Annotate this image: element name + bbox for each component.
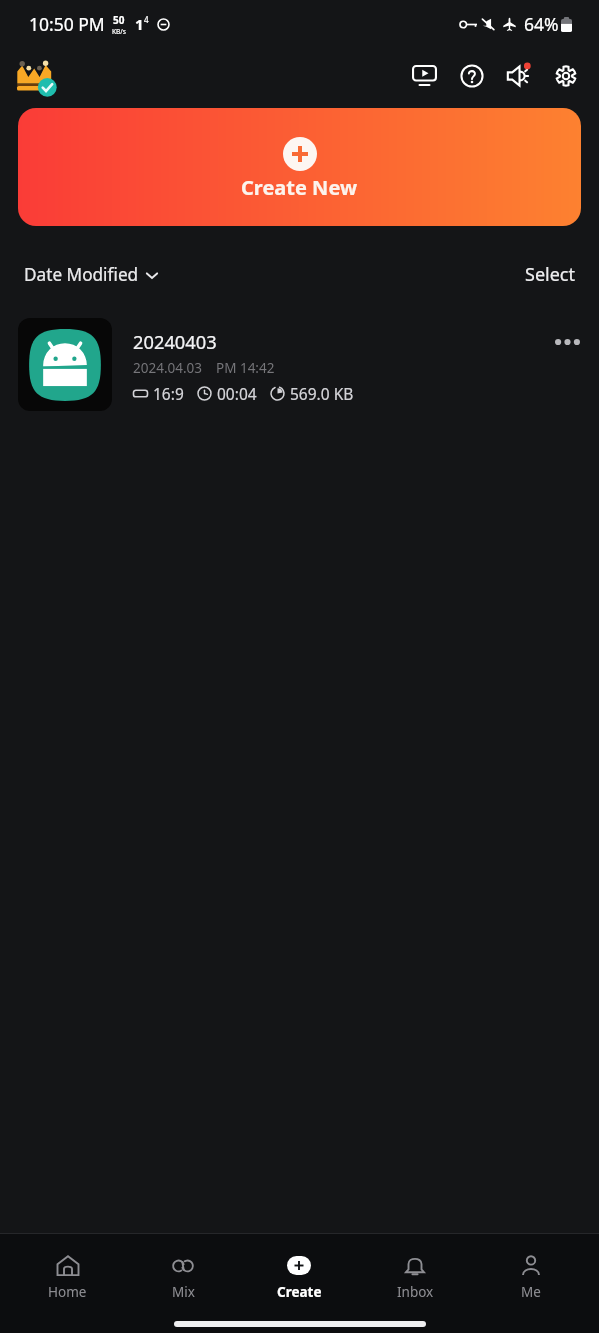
staticText: Me xyxy=(521,1283,541,1300)
button[interactable]: Select xyxy=(525,262,575,286)
staticText: KB/s xyxy=(112,27,126,36)
button[interactable]: Mix xyxy=(125,1255,241,1300)
staticText: 16:9 xyxy=(153,383,184,404)
button[interactable]: Me xyxy=(473,1255,589,1300)
staticText: 1 xyxy=(135,14,144,34)
button[interactable]: Create xyxy=(241,1255,357,1300)
staticText: PM 14:42 xyxy=(216,359,275,377)
button[interactable]: Home xyxy=(10,1255,125,1300)
staticText: 10:50 PM xyxy=(29,12,105,36)
staticText: 4 xyxy=(144,14,149,25)
button[interactable]: Help xyxy=(448,53,495,99)
staticText: 50 xyxy=(113,13,125,27)
staticText: Date Modified xyxy=(24,263,139,286)
staticText: 00:04 xyxy=(217,383,257,404)
staticText: 20240403 xyxy=(133,329,217,354)
button[interactable]: More options xyxy=(545,320,589,364)
staticText: Create xyxy=(277,1283,322,1300)
button[interactable]: Inbox xyxy=(357,1255,473,1300)
staticText: 569.0 KB xyxy=(290,383,354,404)
button[interactable]: Announcements xyxy=(495,53,542,99)
staticText: Select xyxy=(525,262,575,286)
staticText: Home xyxy=(48,1283,87,1300)
button[interactable]: 20240403 xyxy=(0,312,599,418)
button[interactable]: Date Modified xyxy=(24,263,160,286)
staticText: Create New xyxy=(241,174,358,201)
button[interactable]: Pro account xyxy=(11,54,61,98)
staticText: 2024.04.03 xyxy=(133,359,203,377)
staticText: 64% xyxy=(524,12,559,36)
staticText: Inbox xyxy=(397,1283,434,1300)
button[interactable]: Tutorials xyxy=(401,53,448,99)
button[interactable]: Create New xyxy=(18,108,581,226)
staticText: Mix xyxy=(172,1283,195,1300)
button[interactable]: Settings xyxy=(542,53,589,99)
